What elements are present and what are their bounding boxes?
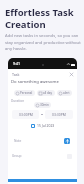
staticText: 9:41 (13, 61, 20, 66)
staticText: Add new tasks in seconds, so you can sta… (5, 33, 81, 51)
button[interactable]: 15 Jul 2023 (8, 123, 77, 128)
staticText: Duration (11, 99, 25, 103)
staticText: 15 Jul 2023 (37, 123, 55, 128)
button[interactable]: 03:00PM (12, 110, 39, 119)
staticText: 30min (40, 103, 49, 107)
staticText: Do something awesome (11, 79, 59, 85)
button[interactable]: alert (57, 90, 72, 96)
staticText: Task (12, 72, 20, 77)
button[interactable]: 30min (34, 102, 51, 108)
button[interactable]: Close (69, 72, 74, 77)
staticText: Note (14, 139, 22, 143)
staticText: Group (12, 154, 22, 158)
staticText: 03:00PM (19, 112, 33, 117)
button[interactable]: Personal (14, 90, 35, 96)
button[interactable]: Send (64, 138, 70, 144)
staticText: Effortless Task Creation (5, 6, 74, 30)
staticText: 03:30PM (52, 112, 66, 117)
staticText: Personal (20, 91, 33, 95)
staticText: all day (43, 91, 53, 95)
button[interactable]: 03:30PM (45, 110, 73, 119)
staticText: alert (63, 91, 70, 95)
button[interactable]: all day (37, 90, 55, 96)
